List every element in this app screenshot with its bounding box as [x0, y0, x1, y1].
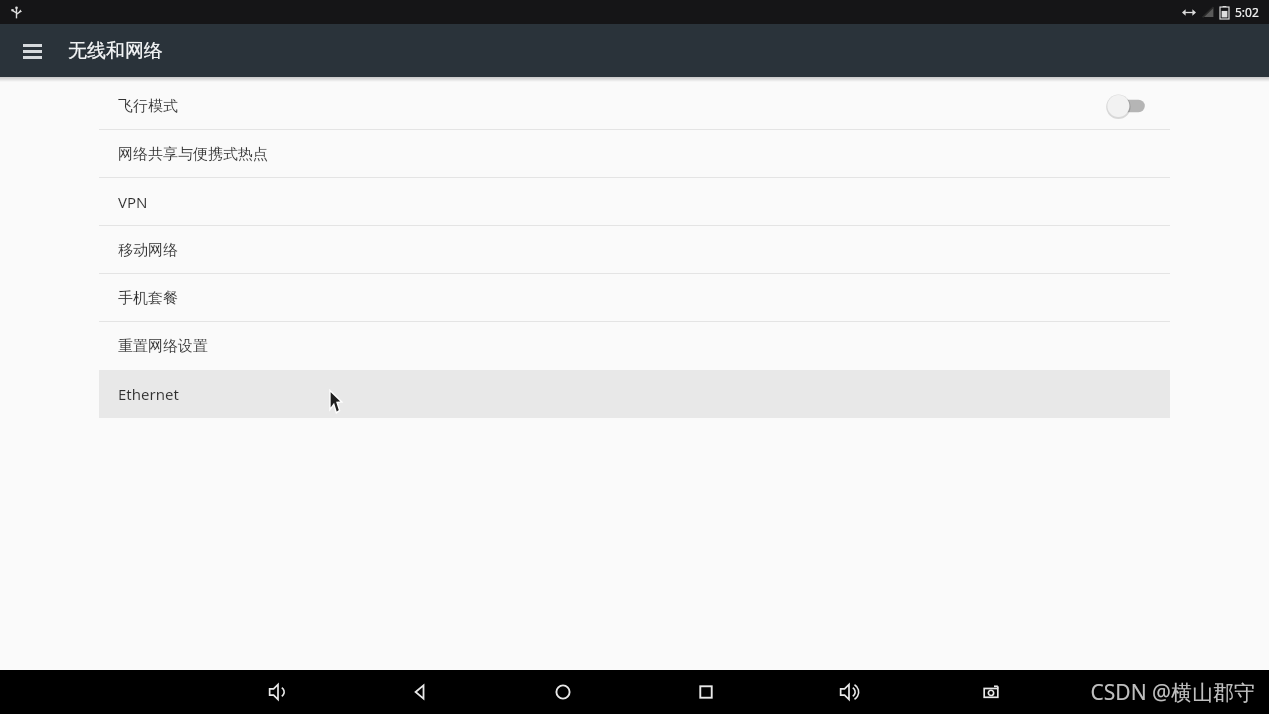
staticText: Ethernet [118, 384, 179, 404]
button[interactable]: Volume up [827, 670, 871, 714]
button[interactable]: VPN [99, 178, 1170, 226]
staticText: 网络共享与便携式热点 [118, 145, 268, 164]
staticText: 5:02 [1235, 4, 1259, 20]
staticText: 无线和网络 [68, 39, 163, 63]
button[interactable]: Ethernet [99, 370, 1170, 418]
button[interactable]: 网络共享与便携式热点 [99, 130, 1170, 178]
staticText: 手机套餐 [118, 289, 178, 308]
staticText: 重置网络设置 [118, 337, 208, 356]
button[interactable]: 手机套餐 [99, 274, 1170, 322]
button[interactable]: 飞行模式 [99, 82, 1170, 130]
button[interactable]: Recent apps [684, 670, 728, 714]
button[interactable]: 重置网络设置 [99, 322, 1170, 370]
button[interactable]: Airplane mode toggle, off [1108, 93, 1148, 119]
button[interactable]: Home [541, 670, 585, 714]
button[interactable]: 移动网络 [99, 226, 1170, 274]
button[interactable]: Screenshot [969, 670, 1013, 714]
staticText: VPN [118, 192, 148, 212]
button[interactable]: Open navigation menu [12, 31, 52, 71]
staticText: 飞行模式 [118, 97, 178, 116]
button[interactable]: Volume down [256, 670, 300, 714]
staticText: CSDN @横山郡守 [1090, 678, 1255, 707]
staticText: 移动网络 [118, 241, 178, 260]
button[interactable]: Back [398, 670, 442, 714]
